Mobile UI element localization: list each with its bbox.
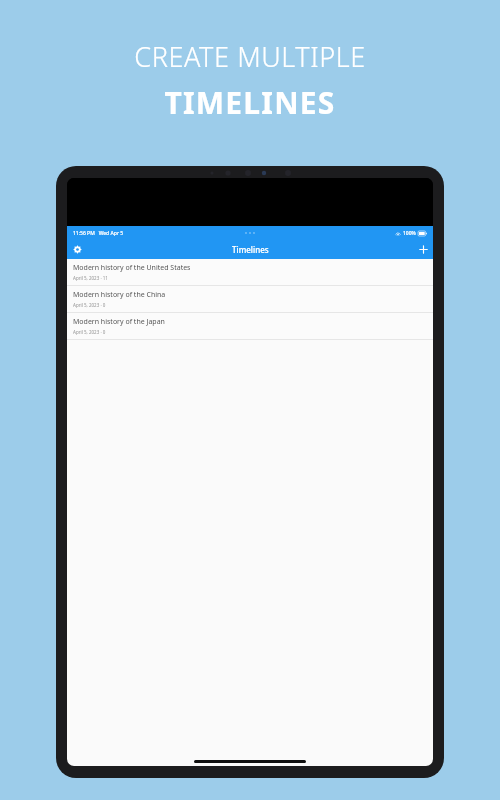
staticText: CREATE MULTIPLE xyxy=(134,38,366,75)
staticText: TIMELINES xyxy=(164,82,336,123)
staticText: Modern history of the United States xyxy=(73,263,191,273)
staticText: April 5, 2023 · 0 xyxy=(73,302,106,308)
staticText: April 5, 2023 · 0 xyxy=(73,329,106,335)
button[interactable]: Modern history of the China xyxy=(67,286,433,313)
staticText: Timelines xyxy=(232,244,269,255)
button[interactable]: Modern history of the United States xyxy=(67,259,433,286)
staticText: Modern history of the Japan xyxy=(73,317,165,327)
staticText: 11:56 PM Wed Apr 5 xyxy=(73,230,124,237)
staticText: Modern history of the China xyxy=(73,290,166,300)
staticText: April 5, 2023 · 11 xyxy=(73,275,108,281)
staticText: 100% xyxy=(403,230,416,237)
button[interactable]: Settings xyxy=(67,240,87,259)
button[interactable]: Modern history of the Japan xyxy=(67,313,433,340)
button[interactable]: Add timeline xyxy=(413,240,433,259)
